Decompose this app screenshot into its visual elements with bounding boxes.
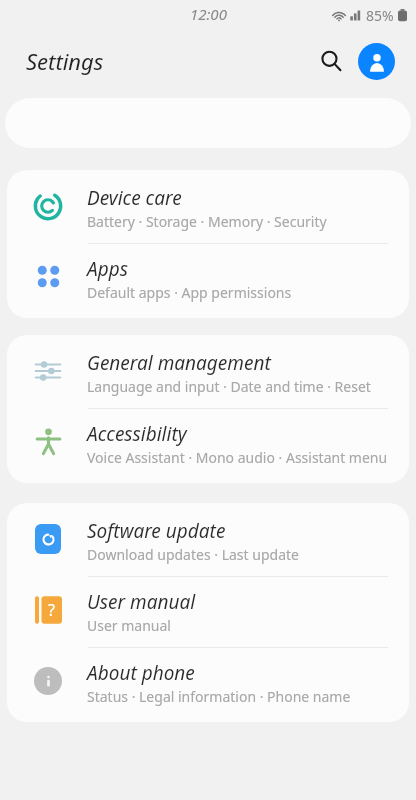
staticText: Settings — [26, 46, 104, 76]
button[interactable]: Software update — [7, 503, 409, 576]
button[interactable]: Apps — [7, 244, 409, 318]
button[interactable]: General management — [7, 335, 409, 408]
staticText: Apps — [87, 256, 128, 282]
staticText: User manual — [87, 589, 196, 615]
button[interactable]: About phone — [7, 648, 409, 722]
button[interactable]: Search — [309, 39, 353, 83]
staticText: Default apps · App permissions — [87, 283, 292, 302]
staticText: 12:00 — [190, 4, 227, 24]
staticText: Voice Assistant · Mono audio · Assistant… — [87, 448, 388, 467]
button[interactable]: ? — [7, 577, 409, 647]
button[interactable]: Accessibility — [7, 409, 409, 483]
button[interactable]: Account — [358, 43, 395, 80]
button[interactable]: Device care — [7, 170, 409, 243]
staticText: About phone — [87, 660, 195, 686]
staticText: Status · Legal information · Phone name — [87, 687, 351, 706]
staticText: Accessibility — [87, 421, 187, 447]
staticText: Device care — [87, 185, 182, 211]
staticText: Software update — [87, 518, 226, 544]
staticText: ? — [48, 599, 55, 621]
staticText: Download updates · Last update — [87, 545, 299, 564]
staticText: General management — [87, 350, 271, 376]
staticText: 85% — [366, 6, 394, 25]
staticText: User manual — [87, 616, 171, 635]
staticText: Language and input · Date and time · Res… — [87, 377, 371, 396]
staticText: Battery · Storage · Memory · Security — [87, 212, 327, 231]
